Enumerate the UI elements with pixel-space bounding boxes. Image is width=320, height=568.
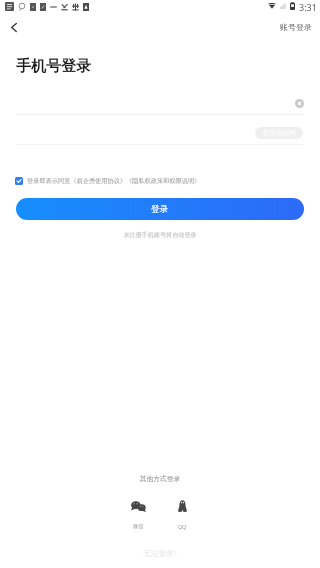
staticText: QQ: [178, 523, 187, 530]
button[interactable]: Verification code field: [0, 120, 320, 144]
button[interactable]: 账号登录: [270, 14, 320, 40]
staticText: 其他方式登录: [0, 474, 320, 483]
button[interactable]: Clear: [295, 99, 304, 108]
staticText: 账号登录: [280, 22, 312, 32]
staticText: 登录即表示同意《易企秀使用协议》《隐私权政策和权限说明》: [27, 177, 201, 185]
staticText: 登录: [151, 204, 169, 215]
staticText: 手机号登录: [16, 57, 91, 76]
staticText: 获取验证码: [263, 129, 296, 137]
staticText: 微信: [133, 523, 144, 530]
button[interactable]: 微信: [127, 497, 149, 530]
button[interactable]: [15, 177, 23, 185]
button[interactable]: QQ: [171, 497, 193, 530]
button[interactable]: Phone number field: [0, 90, 320, 114]
button[interactable]: Back: [2, 15, 26, 39]
staticText: 3:31: [299, 1, 317, 13]
button[interactable]: 获取验证码: [255, 127, 303, 139]
button[interactable]: 登录: [16, 198, 304, 220]
staticText: 未注册手机账号将自动登录: [0, 231, 320, 239]
